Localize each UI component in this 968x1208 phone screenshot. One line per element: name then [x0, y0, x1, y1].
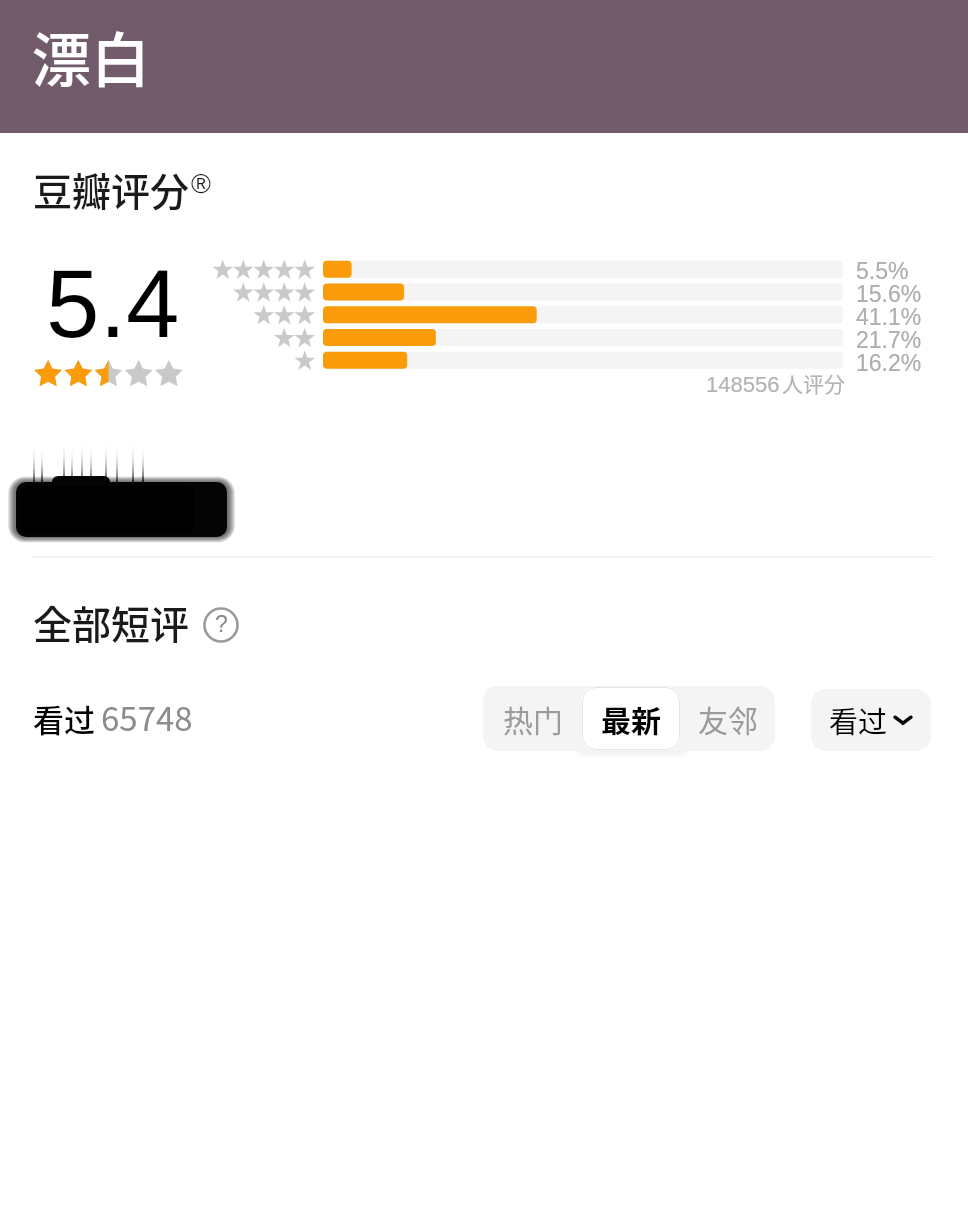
staticText: 最新	[601, 697, 661, 740]
staticText: 15.6%	[856, 281, 922, 304]
other: 展开筛选	[893, 710, 913, 730]
staticText: 友邻	[698, 697, 758, 740]
button[interactable]: 豆瓣评分 5.4 分，148556 人评分	[33, 240, 933, 400]
button[interactable]: 帮助	[203, 607, 239, 643]
button[interactable]: 最新	[582, 687, 680, 750]
button[interactable]: 友邻	[680, 686, 775, 751]
staticText: 21.7%	[856, 327, 922, 350]
staticText: 豆瓣评分	[33, 161, 190, 217]
staticText: 漂白	[32, 14, 151, 99]
staticText: 5.4	[46, 250, 180, 357]
staticText: 148556	[706, 372, 780, 397]
staticText: 16.2%	[856, 350, 922, 373]
staticText: 65748	[101, 693, 193, 741]
staticText: 5.5%	[856, 258, 909, 281]
staticText: 看过	[829, 699, 888, 741]
staticText: ®	[191, 169, 211, 199]
staticText: 41.1%	[856, 304, 922, 327]
button[interactable]: 看过	[811, 689, 931, 751]
staticText: 热门	[503, 697, 563, 740]
staticText: ?	[215, 611, 228, 637]
staticText: 人评分	[782, 368, 845, 398]
staticText: 全部短评	[33, 594, 190, 650]
button[interactable]: 热门	[483, 686, 582, 751]
staticText: 看过	[33, 696, 95, 741]
